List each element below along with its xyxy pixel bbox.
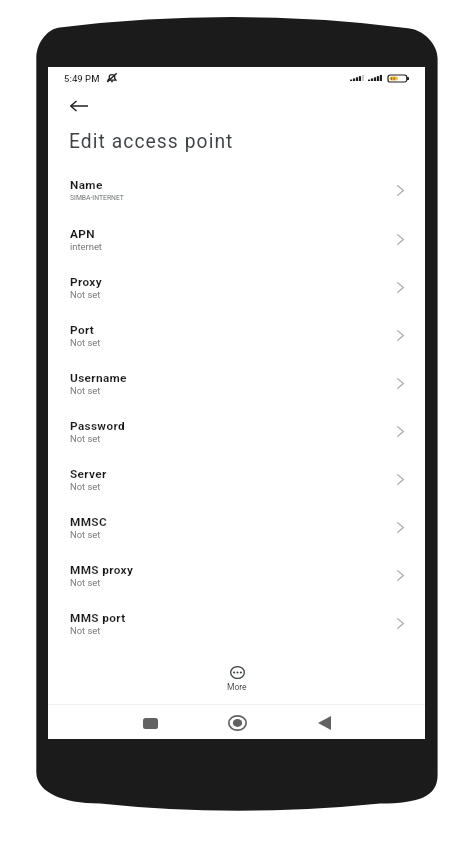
staticText: Name [70,178,103,192]
button[interactable]: MMS port [48,600,425,648]
button[interactable]: Recent apps [131,706,169,740]
staticText: Proxy [70,275,102,289]
staticText: MMS port [70,611,126,625]
staticText: Not set [70,481,101,492]
staticText: Username [70,371,127,385]
staticText: Not set [70,529,101,540]
staticText: More [227,682,247,692]
button[interactable]: APN [48,216,425,264]
staticText: Not set [70,289,101,300]
button[interactable]: Back [305,706,343,740]
staticText: internet [70,241,102,252]
button[interactable]: Proxy [48,264,425,312]
button[interactable]: Password [48,408,425,456]
button[interactable]: More [207,661,267,695]
staticText: Password [70,419,125,433]
staticText: Not set [70,433,101,444]
staticText: Edit access point [69,130,234,153]
button[interactable]: MMSC [48,504,425,552]
staticText: Not set [70,385,101,396]
button[interactable]: MMS proxy [48,552,425,600]
staticText: Not set [70,625,101,636]
staticText: MMS proxy [70,563,134,577]
staticText: Not set [70,577,101,588]
staticText: APN [70,227,95,241]
staticText: 5:49 PM [64,73,100,84]
button[interactable]: Port [48,312,425,360]
staticText: Server [70,467,107,481]
button[interactable]: Name [48,167,425,215]
staticText: Not set [70,337,101,348]
staticText: MMSC [70,515,108,529]
staticText: SIMBA-INTERNET [70,194,124,202]
button[interactable]: Home [218,706,256,740]
button[interactable]: Navigate up [62,89,96,123]
button[interactable]: Server [48,456,425,504]
button[interactable]: Username [48,360,425,408]
staticText: Port [70,323,95,337]
